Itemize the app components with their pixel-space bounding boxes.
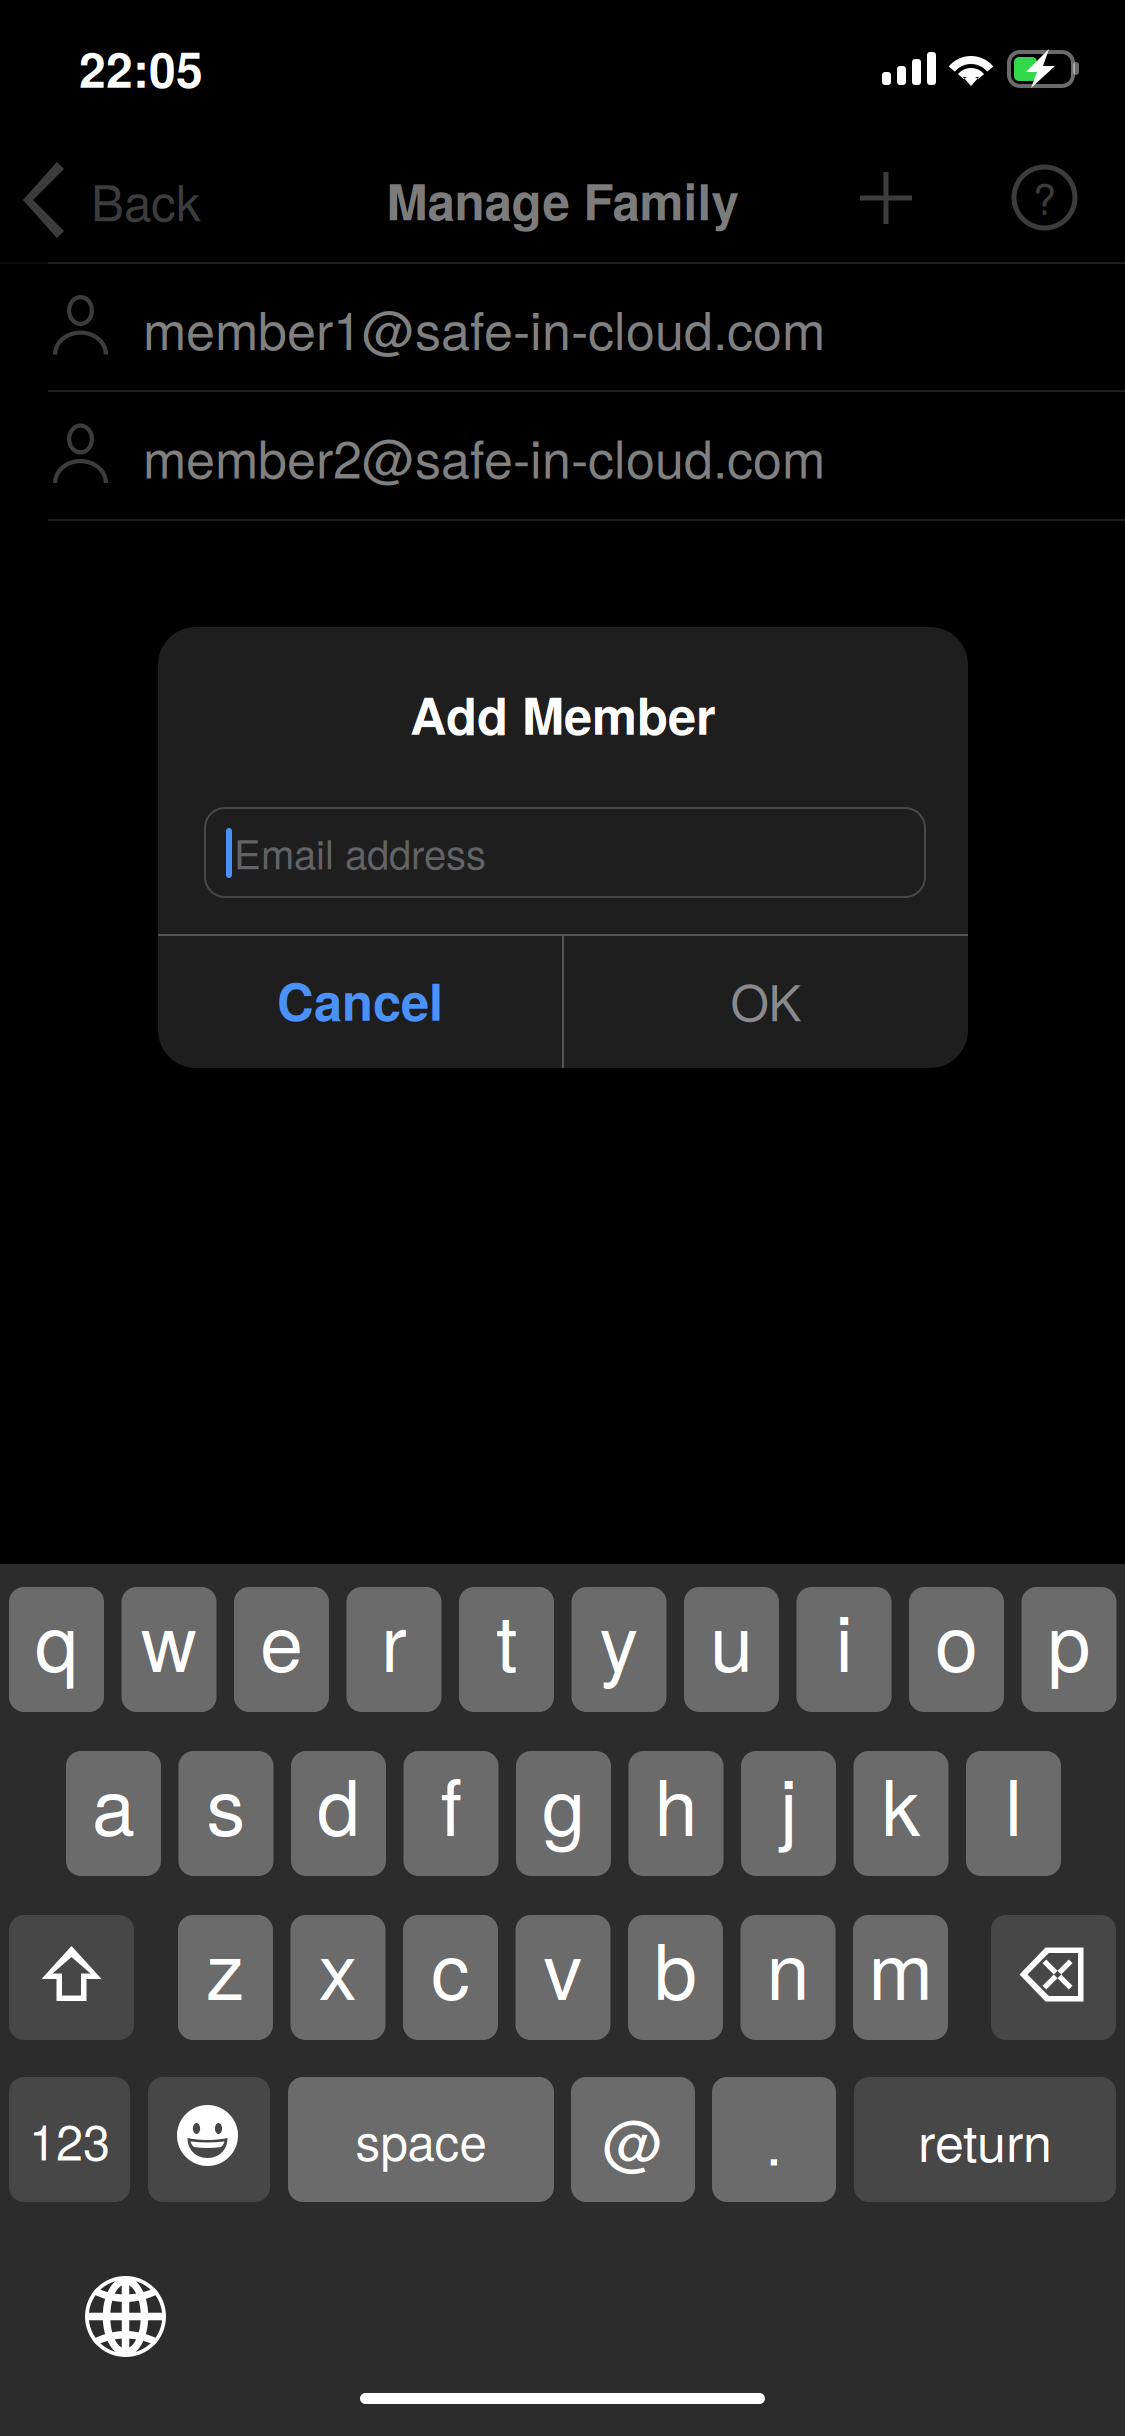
button[interactable]: g [516,1751,611,1876]
staticText: q [35,1583,78,1694]
staticText: ? [1033,167,1056,227]
button[interactable]: k [853,1751,948,1876]
staticText: t [496,1583,517,1694]
staticText: i [835,1583,852,1694]
staticText: o [935,1583,978,1694]
staticText: Manage Family [386,165,738,235]
button[interactable]: . [712,2077,836,2202]
staticText: Email address [234,823,486,881]
staticText: f [440,1747,461,1858]
button[interactable]: v [515,1915,610,2040]
staticText: h [654,1747,697,1858]
staticText: e [260,1583,303,1694]
button[interactable]: z [178,1915,273,2040]
staticText: Back [91,165,201,235]
staticText: z [206,1911,245,2022]
staticText: u [710,1583,753,1694]
staticText: return [918,2102,1052,2177]
button[interactable]: Next keyboard [85,2276,166,2357]
staticText: x [318,1911,357,2022]
staticText: 123 [29,2105,110,2174]
staticText: p [1047,1583,1090,1694]
button[interactable]: Help [984,137,1104,257]
button[interactable]: u [684,1587,779,1712]
staticText: a [92,1747,135,1858]
button[interactable]: f [403,1751,498,1876]
staticText: m [868,1911,932,2022]
staticText: l [1005,1747,1022,1858]
staticText: n [766,1911,809,2022]
staticText: k [881,1747,920,1858]
staticText: Cancel [277,964,443,1036]
button[interactable]: return [854,2077,1116,2202]
button[interactable]: member2@safe-in-cloud.com [0,392,1125,520]
button[interactable]: Back [6,150,236,250]
button[interactable]: s [178,1751,273,1876]
button[interactable]: h [628,1751,723,1876]
staticText: c [431,1911,470,2022]
staticText: @ [602,2096,663,2182]
button[interactable]: x [290,1915,385,2040]
staticText: y [599,1583,638,1694]
button[interactable]: Cancel [158,936,562,1068]
staticText: space [355,2104,486,2175]
button[interactable]: q [9,1587,104,1712]
button[interactable]: a [66,1751,161,1876]
staticText: r [381,1583,407,1694]
button[interactable]: space [288,2077,554,2202]
staticText: b [654,1911,697,2022]
staticText: OK [730,965,801,1035]
button[interactable]: m [853,1915,948,2040]
button[interactable]: n [740,1915,835,2040]
staticText: 22:05 [79,34,203,102]
button[interactable]: c [403,1915,498,2040]
button[interactable]: y [571,1587,666,1712]
button[interactable]: b [628,1915,723,2040]
staticText: member2@safe-in-cloud.com [143,419,825,493]
staticText: j [780,1747,797,1858]
button[interactable]: e [234,1587,329,1712]
staticText: w [141,1583,197,1694]
staticText: d [317,1747,360,1858]
staticText: . [765,2096,782,2182]
button[interactable]: t [459,1587,554,1712]
button[interactable]: i [796,1587,891,1712]
button[interactable]: p [1021,1587,1116,1712]
button[interactable]: Emoji [148,2077,270,2202]
staticText: member1@safe-in-cloud.com [143,290,825,365]
button[interactable]: d [291,1751,386,1876]
button[interactable]: 123 [9,2077,130,2202]
staticText: v [543,1911,582,2022]
button[interactable]: w [121,1587,216,1712]
button[interactable]: r [346,1587,441,1712]
button[interactable]: @ [571,2077,695,2202]
button[interactable]: OK [564,936,968,1068]
staticText: s [206,1747,245,1858]
button[interactable]: Delete [991,1915,1116,2040]
button[interactable]: o [909,1587,1004,1712]
button[interactable]: j [741,1751,836,1876]
button[interactable]: l [966,1751,1061,1876]
button[interactable]: Shift [9,1915,134,2040]
button[interactable]: Add member [826,138,946,258]
button[interactable]: member1@safe-in-cloud.com [0,264,1125,391]
staticText: Add Member [410,678,716,750]
staticText: g [542,1747,585,1858]
